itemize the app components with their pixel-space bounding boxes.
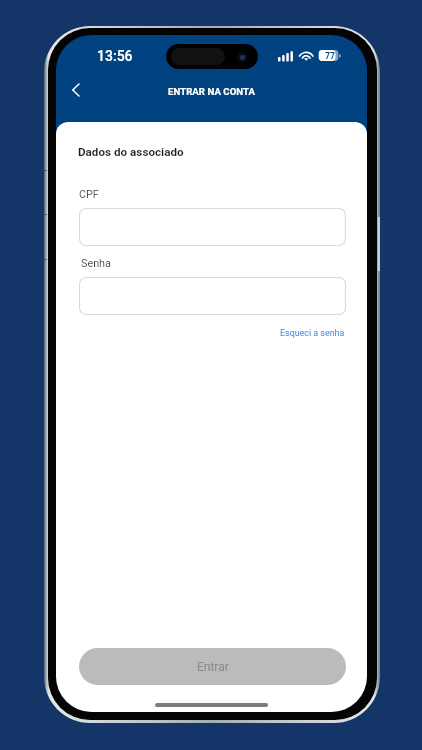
staticText: 77 [325,51,335,61]
button[interactable]: Entrar [79,648,346,685]
staticText: CPF [79,188,99,201]
staticText: Senha [81,257,111,270]
button[interactable]: Voltar [59,74,91,106]
button[interactable] [79,277,346,315]
staticText: 13:56 [97,48,133,64]
staticText: ENTRAR NA CONTA [56,86,367,97]
staticText: Esqueci a senha [280,328,345,338]
staticText: Dados do associado [78,145,184,159]
button[interactable]: Esqueci a senha [278,326,347,340]
button[interactable] [79,208,346,246]
staticText: Entrar [197,660,229,674]
